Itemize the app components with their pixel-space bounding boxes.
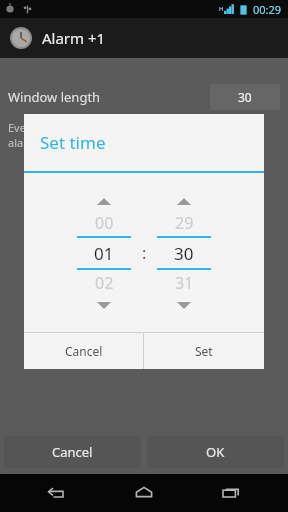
staticText: 00: [95, 212, 114, 234]
staticText: Every day at the same time the alarm wil…: [8, 120, 168, 150]
staticText: 29: [175, 212, 194, 234]
staticText: :: [142, 242, 147, 264]
button[interactable]: Increment Minutes: [157, 192, 211, 210]
staticText: 30: [174, 242, 194, 265]
staticText: Cancel: [52, 443, 93, 461]
staticText: Alarm +1: [42, 28, 106, 48]
button[interactable]: 30: [210, 84, 280, 110]
button[interactable]: Back: [27, 474, 87, 512]
staticText: 01: [94, 242, 114, 265]
staticText: 30: [238, 89, 252, 105]
button[interactable]: Decrement Hours: [77, 296, 131, 314]
button[interactable]: Home: [114, 474, 174, 512]
staticText: 02: [95, 272, 114, 294]
staticText: Window length: [8, 88, 101, 106]
button[interactable]: Decrement Minutes: [157, 296, 211, 314]
staticText: Cancel: [65, 343, 103, 359]
staticText: H: [219, 5, 224, 13]
button[interactable]: Cancel: [4, 436, 141, 468]
staticText: Set time: [40, 131, 106, 154]
button[interactable]: OK: [147, 436, 284, 468]
button[interactable]: Cancel: [24, 333, 143, 369]
button[interactable]: Recent apps: [201, 474, 261, 512]
staticText: 31: [175, 272, 194, 294]
button[interactable]: Increment Hours: [77, 192, 131, 210]
staticText: Set: [195, 343, 213, 359]
button[interactable]: Set: [144, 333, 264, 369]
staticText: 00:29: [253, 2, 282, 17]
staticText: OK: [206, 443, 225, 461]
